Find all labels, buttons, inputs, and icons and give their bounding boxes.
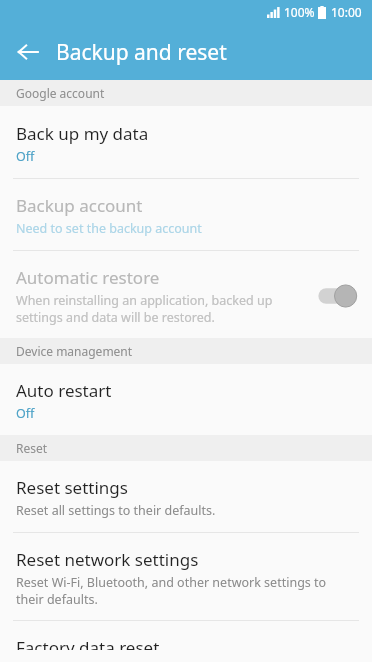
- staticText: 100%: [284, 4, 315, 20]
- button[interactable]: Back: [8, 32, 48, 72]
- staticText: Backup account: [16, 194, 143, 217]
- staticText: Need to set the backup account: [16, 220, 202, 237]
- button[interactable]: Back up my data: [0, 106, 372, 178]
- staticText: Off: [16, 148, 35, 165]
- staticText: Device management: [16, 343, 133, 359]
- button[interactable]: Automatic restore: [0, 251, 372, 338]
- staticText: Back up my data: [16, 122, 149, 145]
- button[interactable]: Automatic restore toggle: [314, 281, 358, 311]
- button[interactable]: Auto restart: [0, 364, 372, 435]
- staticText: Automatic restore: [16, 266, 160, 289]
- button[interactable]: Reset settings: [0, 461, 372, 532]
- staticText: Reset settings: [16, 476, 128, 499]
- staticText: Factory data reset: [16, 636, 160, 650]
- staticText: Backup and reset: [56, 38, 227, 67]
- button[interactable]: Reset network settings: [0, 533, 372, 620]
- staticText: When reinstalling an application, backed…: [16, 292, 302, 326]
- staticText: Google account: [16, 85, 105, 101]
- button[interactable]: Backup account: [0, 179, 372, 250]
- staticText: Reset all settings to their defaults.: [16, 502, 216, 519]
- staticText: Reset network settings: [16, 548, 199, 571]
- button[interactable]: Factory data reset: [0, 621, 372, 662]
- staticText: Reset: [16, 440, 48, 456]
- staticText: Reset Wi-Fi, Bluetooth, and other networ…: [16, 574, 356, 608]
- staticText: Off: [16, 405, 35, 422]
- staticText: Auto restart: [16, 379, 112, 402]
- staticText: 10:00: [331, 4, 362, 20]
